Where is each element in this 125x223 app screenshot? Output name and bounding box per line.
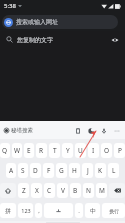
button[interactable]: .: [75, 203, 83, 218]
button[interactable]: T: [49, 143, 60, 158]
staticText: H: [72, 166, 77, 175]
button[interactable]: Shift: [0, 183, 16, 198]
staticText: L: [112, 166, 116, 175]
button[interactable]: J: [82, 163, 93, 178]
button[interactable]: Show: [110, 35, 119, 44]
button[interactable]: F: [43, 163, 54, 178]
staticText: 拼: [5, 207, 11, 215]
button[interactable]: V: [57, 183, 68, 198]
button[interactable]: M: [96, 183, 107, 198]
button[interactable]: 拼: [0, 203, 16, 218]
staticText: 123: [21, 207, 31, 214]
staticText: M: [99, 186, 105, 195]
staticText: U: [78, 146, 83, 155]
staticText: K: [98, 166, 103, 175]
button[interactable]: N: [83, 183, 94, 198]
staticText: Y: [66, 146, 70, 155]
button[interactable]: K: [95, 163, 106, 178]
button[interactable]: ,: [35, 203, 42, 218]
staticText: 您复制的文字: [17, 36, 53, 44]
button[interactable]: Voice input: [97, 124, 110, 137]
staticText: 5:38: [4, 2, 16, 10]
staticText: G: [59, 166, 64, 175]
staticText: P: [118, 146, 122, 155]
staticText: I: [92, 146, 95, 155]
staticText: V: [61, 186, 65, 195]
button[interactable]: 中: [85, 203, 100, 218]
button[interactable]: A: [6, 163, 16, 178]
staticText: .: [78, 207, 80, 215]
button[interactable]: R: [36, 143, 47, 158]
button[interactable]: 搜索或输入网址: [2, 15, 118, 29]
button[interactable]: B: [70, 183, 81, 198]
staticText: E: [27, 146, 31, 155]
button[interactable]: 换行: [102, 203, 125, 218]
other: Search: [6, 36, 13, 43]
staticText: A: [9, 166, 14, 175]
staticText: R: [39, 146, 44, 155]
staticText: S: [21, 166, 25, 175]
button[interactable]: Backspace: [109, 183, 125, 198]
button[interactable]: 123: [18, 203, 33, 218]
staticText: 换行: [109, 208, 119, 214]
staticText: F: [47, 166, 51, 175]
button[interactable]: O: [101, 143, 112, 158]
staticText: N: [86, 186, 91, 195]
staticText: B: [73, 186, 78, 195]
button[interactable]: G: [56, 163, 67, 178]
staticText: O: [104, 146, 110, 155]
staticText: 搜索或输入网址: [16, 18, 58, 26]
button[interactable]: H: [69, 163, 80, 178]
button[interactable]: More options: [110, 124, 123, 137]
button[interactable]: Theme: [84, 124, 97, 137]
staticText: Z: [22, 186, 26, 195]
staticText: Q: [2, 146, 8, 155]
button[interactable]: X: [31, 183, 42, 198]
button[interactable]: Q: [0, 143, 10, 158]
button[interactable]: C: [44, 183, 55, 198]
button[interactable]: P: [114, 143, 125, 158]
button[interactable]: W: [12, 143, 22, 158]
staticText: J: [87, 166, 89, 175]
staticText: X: [35, 186, 39, 195]
button[interactable]: E: [24, 143, 34, 158]
staticText: D: [33, 166, 38, 175]
staticText: ,: [38, 207, 40, 215]
button[interactable]: L: [108, 163, 119, 178]
button[interactable]: Clipboard: [71, 124, 84, 137]
button[interactable]: Z: [18, 183, 29, 198]
button[interactable]: Y: [62, 143, 73, 158]
staticText: W: [14, 146, 21, 155]
button[interactable]: I: [88, 143, 99, 158]
button[interactable]: Space: [44, 203, 73, 218]
staticText: 秘塔搜索: [11, 127, 33, 134]
staticText: T: [53, 146, 57, 155]
staticText: C: [47, 186, 52, 195]
button[interactable]: U: [75, 143, 86, 158]
staticText: 中: [90, 207, 96, 215]
button[interactable]: S: [18, 163, 28, 178]
button[interactable]: D: [30, 163, 41, 178]
